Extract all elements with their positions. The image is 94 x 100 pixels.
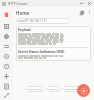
button[interactable]: Info bbox=[0, 61, 13, 71]
staticText: Clear Cache bbox=[65, 88, 78, 91]
staticText: Home bbox=[16, 10, 30, 16]
button[interactable]: Minimize bbox=[77, 0, 85, 7]
button[interactable]: Tools bbox=[0, 71, 13, 81]
button[interactable]: Payload bbox=[16, 26, 91, 61]
button[interactable]: Home bbox=[0, 9, 13, 19]
staticText: Clear Payload bbox=[28, 88, 43, 91]
button[interactable]: More options bbox=[86, 9, 93, 16]
button[interactable]: Notes bbox=[0, 81, 13, 91]
button[interactable]: Share bbox=[0, 91, 13, 100]
button[interactable]: Clear Payload bbox=[26, 86, 45, 92]
button[interactable]: Close bbox=[85, 0, 93, 7]
button[interactable]: Copy bbox=[78, 9, 86, 17]
staticText: Server Name Indication (SNI) bbox=[18, 50, 65, 54]
button[interactable]: Logs bbox=[0, 21, 13, 31]
staticText: Payload bbox=[18, 28, 31, 32]
button[interactable]: Network bbox=[0, 41, 13, 51]
staticText: HTTP Custom bbox=[8, 2, 28, 6]
button[interactable]: Scanner bbox=[0, 51, 13, 61]
button[interactable]: Local IP: 192.168.1.101 bbox=[16, 18, 70, 24]
button[interactable]: Modules bbox=[0, 31, 13, 41]
button[interactable]: Clear SNI bbox=[47, 86, 61, 92]
staticText: Local IP: 192.168.1.101 bbox=[18, 19, 47, 23]
button[interactable]: Clear Cache bbox=[63, 86, 80, 92]
button[interactable]: Start bbox=[77, 84, 90, 97]
staticText: Clear SNI bbox=[49, 88, 59, 91]
